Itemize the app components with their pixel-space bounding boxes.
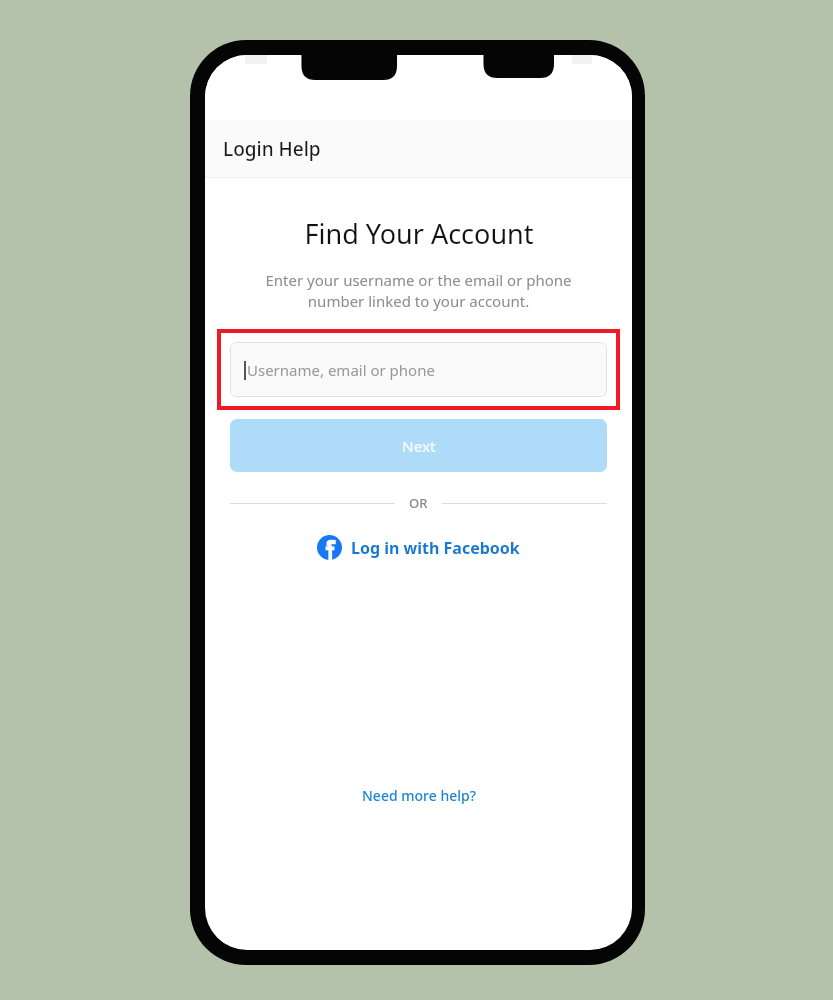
button[interactable]: Username, email or phone — [217, 329, 620, 410]
staticText: Username, email or phone — [247, 360, 435, 380]
button[interactable]: Need more help? — [348, 780, 490, 811]
staticText: Next — [402, 436, 436, 456]
staticText: Log in with Facebook — [351, 537, 520, 559]
staticText: Login Help — [223, 136, 321, 162]
staticText: OR — [409, 494, 428, 512]
staticText: Find Your Account — [304, 215, 534, 252]
staticText: Enter your username or the email or phon… — [227, 270, 610, 312]
staticText: Need more help? — [362, 786, 476, 805]
button[interactable]: Log in with Facebook — [305, 531, 532, 564]
button[interactable]: Next — [230, 419, 607, 472]
